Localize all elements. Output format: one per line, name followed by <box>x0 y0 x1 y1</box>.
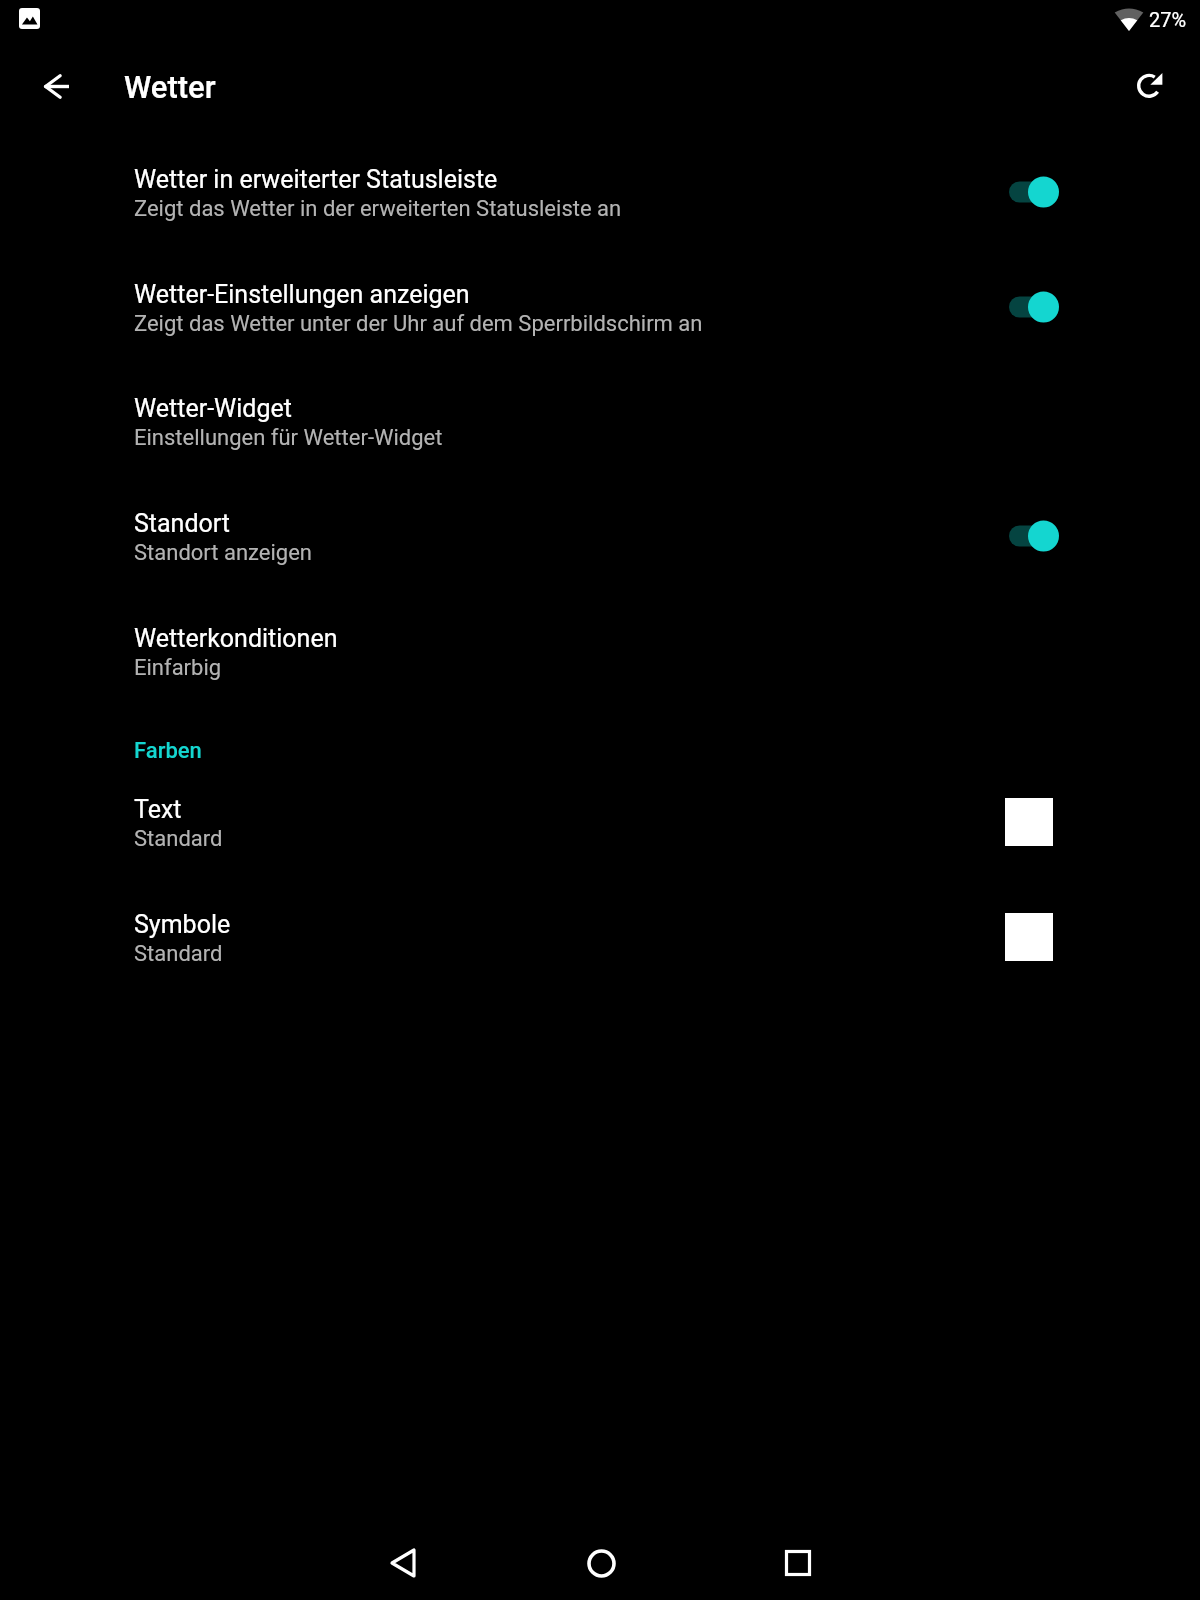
staticText: 27% <box>1149 8 1187 31</box>
staticText: Standort anzeigen <box>134 540 313 566</box>
button[interactable]: Back <box>355 1515 451 1600</box>
staticText: Text <box>134 795 182 824</box>
button[interactable]: Recent apps <box>750 1515 846 1600</box>
staticText: Standard <box>134 941 223 967</box>
button[interactable]: Home <box>553 1515 649 1600</box>
staticText: Wetter in erweiterter Statusleiste <box>134 165 498 194</box>
button[interactable]: Refresh <box>1121 57 1179 115</box>
staticText: Wetter-Einstellungen anzeigen <box>134 280 470 309</box>
staticText: Zeigt das Wetter unter der Uhr auf dem S… <box>134 311 703 337</box>
staticText: Symbole <box>134 910 231 939</box>
button[interactable]: Wetter-Einstellungen anzeigen <box>0 246 1200 351</box>
staticText: Standard <box>134 826 223 852</box>
staticText: Standort <box>134 509 231 538</box>
staticText: Einfarbig <box>134 655 222 681</box>
button[interactable]: Standort <box>0 475 1200 580</box>
staticText: Wetter <box>124 69 216 105</box>
staticText: Einstellungen für Wetter-Widget <box>134 425 443 451</box>
staticText: Farben <box>134 738 202 764</box>
button[interactable]: Symbole <box>0 876 1200 981</box>
staticText: Wetterkonditionen <box>134 624 338 653</box>
button[interactable]: Back <box>26 56 86 116</box>
staticText: Zeigt das Wetter in der erweiterten Stat… <box>134 196 622 222</box>
button[interactable]: Wetter-Widget <box>0 360 1200 465</box>
staticText: Wetter-Widget <box>134 394 292 423</box>
button[interactable]: Wetterkonditionen <box>0 590 1200 695</box>
button[interactable]: Text <box>0 761 1200 866</box>
button[interactable]: Wetter in erweiterter Statusleiste <box>0 131 1200 236</box>
